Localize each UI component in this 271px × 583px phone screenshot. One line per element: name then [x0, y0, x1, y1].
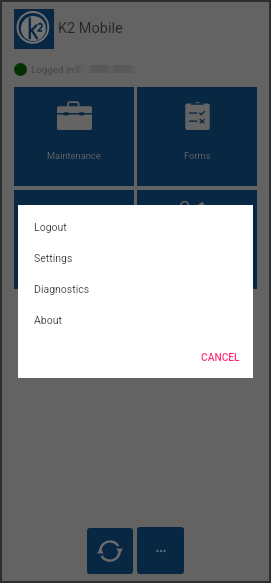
staticText: Logout — [34, 221, 67, 233]
button[interactable]: Sync — [87, 528, 133, 574]
staticText: Settings — [34, 252, 73, 264]
button[interactable]: Settings — [18, 242, 253, 273]
staticText: Logged in — [31, 64, 74, 75]
button[interactable]: More options — [137, 527, 184, 574]
button[interactable]: About — [18, 304, 253, 335]
staticText: About — [34, 314, 62, 326]
button[interactable]: Maintenance — [14, 87, 134, 186]
button[interactable]: Inspections — [14, 190, 134, 289]
button[interactable]: Logout — [18, 211, 253, 242]
staticText: Inspections — [50, 253, 99, 264]
staticText: CANCEL — [201, 352, 240, 364]
button[interactable]: Diagnostics — [18, 273, 253, 304]
button[interactable]: Reports — [137, 190, 257, 289]
staticText: Forms — [184, 150, 211, 161]
staticText: Maintenance — [47, 150, 101, 161]
staticText: Diagnostics — [34, 283, 90, 295]
staticText: K2 Mobile — [58, 20, 123, 37]
button[interactable]: CANCEL — [197, 349, 244, 367]
button[interactable]: Forms — [137, 87, 257, 186]
